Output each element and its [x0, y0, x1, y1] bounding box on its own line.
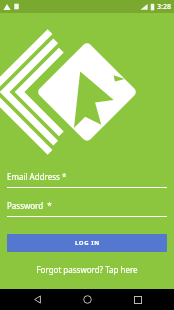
staticText: Email Address *: [7, 171, 67, 182]
button[interactable]: Email Address *: [7, 171, 167, 188]
button[interactable]: Home: [73, 289, 101, 310]
button[interactable]: Password *: [7, 200, 167, 217]
staticText: 3:28: [157, 2, 171, 12]
staticText: Password *: [7, 200, 52, 211]
button[interactable]: Back: [23, 289, 51, 310]
button[interactable]: Recent apps: [124, 289, 152, 310]
button[interactable]: LOG IN: [7, 234, 167, 252]
staticText: Forgot password? Tap here: [36, 264, 138, 275]
staticText: LOG IN: [75, 239, 100, 247]
button[interactable]: Forgot password? Tap here: [7, 264, 167, 275]
